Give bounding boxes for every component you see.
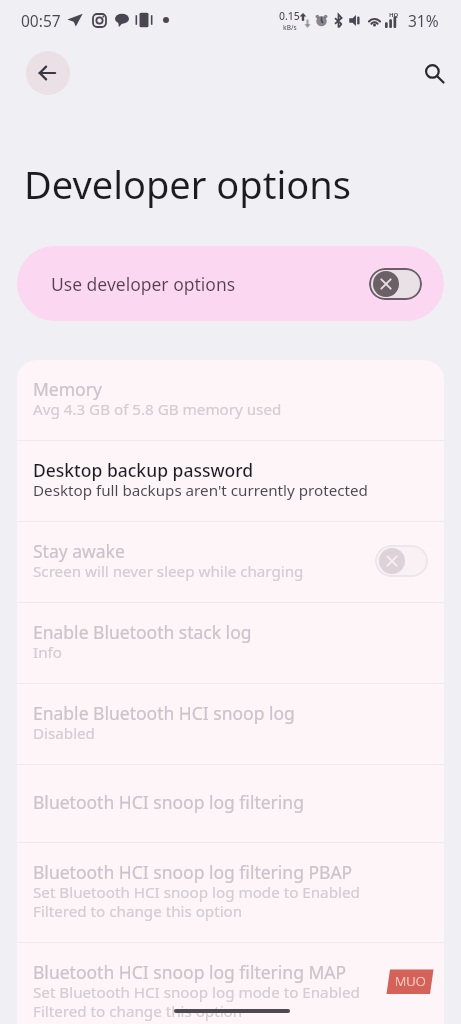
staticText: Desktop backup password xyxy=(33,458,254,482)
staticText: 00:57 xyxy=(21,10,61,31)
staticText: 31% xyxy=(408,10,439,31)
button[interactable]: Toggle xyxy=(375,545,428,577)
button[interactable]: Stay awake xyxy=(17,522,444,602)
staticText: Developer options xyxy=(24,158,351,210)
button[interactable]: Toggle xyxy=(369,268,422,300)
staticText: Use developer options xyxy=(51,272,236,296)
button[interactable]: Desktop backup password xyxy=(17,441,444,521)
staticText: Set Bluetooth HCI snoop log mode to Enab… xyxy=(33,982,360,1003)
button[interactable]: Search xyxy=(412,51,456,95)
staticText: Stay awake xyxy=(33,539,125,563)
staticText: Avg 4.3 GB of 5.8 GB memory used xyxy=(33,399,282,420)
staticText: Bluetooth HCI snoop log filtering xyxy=(33,790,304,814)
staticText: Enable Bluetooth stack log xyxy=(33,620,252,644)
button[interactable]: Bluetooth HCI snoop log filtering PBAP xyxy=(17,843,444,942)
staticText: 0.15 xyxy=(279,9,300,23)
staticText: Filtered to change this option xyxy=(33,1001,243,1022)
staticText: Bluetooth HCI snoop log filtering PBAP xyxy=(33,860,353,884)
staticText: Info xyxy=(33,642,62,663)
staticText: MUO xyxy=(395,972,426,990)
button[interactable]: Bluetooth HCI snoop log filtering xyxy=(17,765,444,842)
button[interactable]: Memory xyxy=(17,360,444,440)
staticText: HQ xyxy=(389,11,399,19)
staticText: Disabled xyxy=(33,723,95,744)
staticText: kB/s xyxy=(283,23,297,32)
staticText: Desktop full backups aren't currently pr… xyxy=(33,480,368,501)
staticText: Set Bluetooth HCI snoop log mode to Enab… xyxy=(33,882,360,903)
button[interactable]: Use developer options xyxy=(17,246,444,321)
button[interactable]: Enable Bluetooth stack log xyxy=(17,603,444,683)
staticText: Memory xyxy=(33,377,102,401)
staticText: Filtered to change this option xyxy=(33,901,243,922)
staticText: Screen will never sleep while charging xyxy=(33,561,304,582)
button[interactable]: Bluetooth HCI snoop log filtering MAP xyxy=(17,943,444,1024)
button[interactable]: Back xyxy=(26,51,70,95)
staticText: Enable Bluetooth HCI snoop log xyxy=(33,701,295,725)
button[interactable]: Enable Bluetooth HCI snoop log xyxy=(17,684,444,764)
staticText: Bluetooth HCI snoop log filtering MAP xyxy=(33,960,347,984)
